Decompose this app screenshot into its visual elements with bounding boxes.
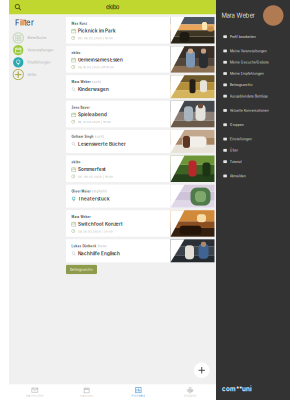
staticText: Lukas Dürrbeck — [71, 244, 96, 248]
button[interactable]: ekibo — [66, 46, 214, 73]
staticText: Biete/Suche — [27, 36, 46, 40]
staticText: empfiehlt — [92, 190, 107, 193]
button[interactable]: Suche — [9, 0, 21, 14]
staticText: Kalender — [80, 394, 93, 397]
staticText: Nachhilfe Englisch — [78, 251, 120, 256]
staticText: Zeno Bayer — [71, 106, 89, 109]
staticText: Oliver Meier — [71, 190, 90, 193]
staticText: Do, 06.02.2020 | 18:00 — [78, 37, 113, 40]
staticText: Gemeinsames Essen — [78, 57, 123, 63]
button[interactable]: Max Kunz — [66, 17, 214, 43]
staticText: Gruppen — [184, 394, 197, 397]
button[interactable]: Pinnwand — [112, 384, 164, 400]
button[interactable]: Oliver Meier — [66, 185, 214, 208]
staticText: Gruppen — [230, 123, 244, 127]
staticText: Kinderwagen — [78, 87, 109, 92]
staticText: Meine Veranstaltungen — [230, 49, 267, 53]
staticText: ekibo — [106, 4, 119, 11]
staticText: Tutorial — [230, 160, 242, 164]
staticText: bietet — [98, 244, 107, 248]
staticText: Sa, 18.04.2020 um 19:00 — [78, 66, 114, 69]
staticText: sucht — [95, 135, 104, 138]
staticText: ekibo — [71, 160, 80, 164]
button[interactable]: Neuer Beitrag — [194, 362, 209, 378]
button[interactable]: Ausgeblendete Beiträge — [216, 90, 290, 102]
staticText: Nachrichten — [26, 394, 44, 397]
staticText: Lesenswerte Bücher — [78, 141, 126, 147]
button[interactable]: Lukas Dürrbeck — [66, 239, 214, 262]
staticText: Switchfoot Konzert — [78, 221, 123, 227]
staticText: ekibo — [71, 51, 80, 55]
staticText: Mara Weber — [71, 215, 90, 219]
button[interactable]: Meine Empfehlungen — [216, 68, 290, 79]
button[interactable]: Beitragsarchiv — [216, 79, 290, 90]
button[interactable]: Meine Gesuche/Gebote — [216, 57, 290, 68]
button[interactable]: Einstellungen — [216, 133, 290, 145]
button[interactable]: Zeno Bayer — [66, 101, 214, 127]
button[interactable]: ekibo — [66, 155, 214, 182]
button[interactable]: ekibo — [9, 68, 66, 81]
button[interactable]: Biete/Suche — [9, 32, 66, 44]
button[interactable]: Empfehlungen — [9, 56, 66, 68]
button[interactable]: Beitragsarchiv — [66, 265, 97, 274]
staticText: Gotham Singh — [71, 135, 93, 138]
staticText: Mara Weber — [71, 80, 90, 84]
staticText: Profil bearbeiten — [230, 35, 256, 39]
button[interactable]: Nachrichten — [9, 384, 61, 400]
staticText: Do, 06.02.2020 | 18:00 — [78, 175, 113, 178]
button[interactable]: Gruppen — [216, 119, 290, 130]
button[interactable]: Tutorial — [216, 156, 290, 167]
staticText: Ausgeblendete Beiträge — [230, 94, 268, 98]
staticText: Meine Gesuche/Gebote — [230, 60, 269, 64]
staticText: Mi, 01.04.2020 | 19:00 — [78, 120, 111, 124]
staticText: Sa, 28.03.2020 | 20:00 — [78, 230, 113, 233]
staticText: Max Kunz — [71, 22, 87, 25]
staticText: ekibo — [27, 73, 36, 76]
button[interactable]: Abmelden — [216, 170, 290, 182]
button[interactable]: Veranstaltungen — [9, 44, 66, 56]
staticText: Spieleabend — [78, 112, 107, 117]
button[interactable]: Mara Weber — [66, 75, 214, 98]
staticText: Veranstaltungen — [27, 48, 53, 52]
staticText: com**uni — [222, 385, 252, 393]
staticText: Empfehlungen — [27, 60, 50, 64]
staticText: Über — [230, 148, 238, 152]
button[interactable]: Meine Veranstaltungen — [216, 45, 290, 57]
button[interactable]: Aktuelle Konversationen — [216, 105, 290, 116]
staticText: sucht — [92, 80, 101, 84]
staticText: Pinnwand — [131, 394, 145, 397]
staticText: Beitragsarchiv — [230, 83, 253, 87]
staticText: Theaterstück — [78, 196, 110, 202]
staticText: Abmelden — [230, 174, 246, 178]
button[interactable]: Gotham Singh — [66, 130, 214, 153]
button[interactable]: Kalender — [61, 384, 113, 400]
button[interactable]: Gruppen — [164, 384, 216, 400]
staticText: Beitragsarchiv — [70, 267, 93, 272]
staticText: Filter — [15, 18, 34, 27]
staticText: Einstellungen — [230, 137, 252, 141]
button[interactable]: Profil bearbeiten — [216, 31, 290, 42]
staticText: Picknick im Park — [78, 28, 116, 34]
staticText: Meine Empfehlungen — [230, 71, 264, 76]
staticText: Sommerfest — [78, 167, 106, 172]
button[interactable]: Über — [216, 145, 290, 156]
staticText: Aktuelle Konversationen — [230, 108, 269, 113]
staticText: Mara Weber — [221, 12, 254, 19]
button[interactable]: Mara Weber — [66, 210, 214, 237]
